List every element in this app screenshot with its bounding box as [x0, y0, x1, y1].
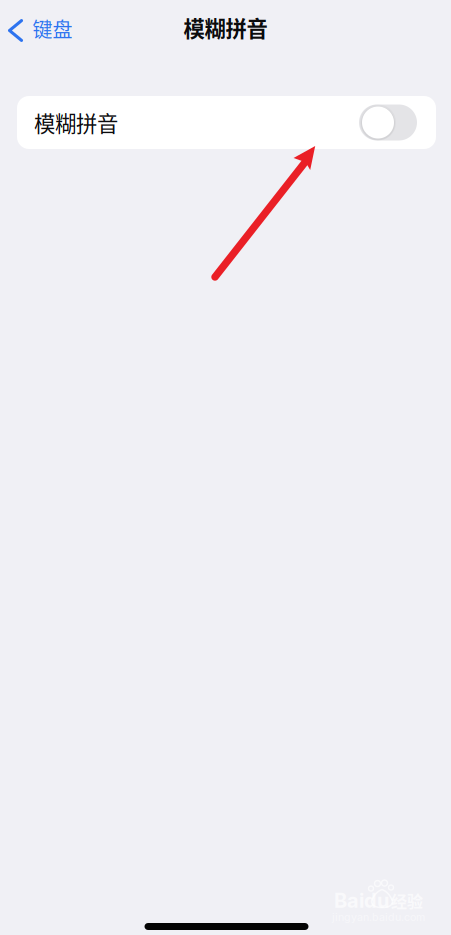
staticText: 键盘 [32, 14, 72, 43]
staticText: 经验 [391, 889, 423, 912]
staticText: Baidu [334, 888, 389, 913]
button[interactable]: 模糊拼音 [359, 104, 417, 140]
staticText: 模糊拼音 [183, 12, 267, 43]
button[interactable]: 键盘 [0, 7, 82, 50]
staticText: 模糊拼音 [34, 107, 118, 138]
